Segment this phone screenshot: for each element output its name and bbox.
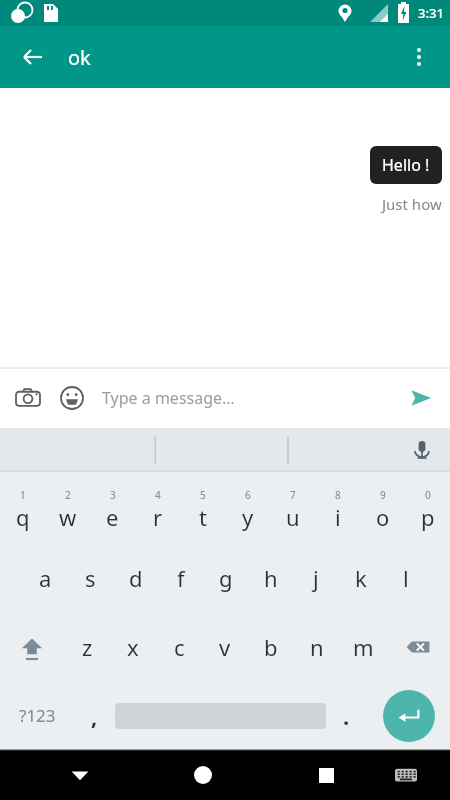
button[interactable]: Send xyxy=(398,375,444,421)
staticText: k xyxy=(355,563,367,593)
staticText: 3:31 xyxy=(418,4,444,22)
staticText: , xyxy=(91,701,98,731)
staticText: f xyxy=(177,563,185,593)
staticText: x xyxy=(127,632,139,662)
staticText: 8 xyxy=(335,488,341,502)
staticText: m xyxy=(353,632,374,662)
button[interactable]: 2 xyxy=(45,476,90,544)
staticText: 5 xyxy=(200,488,206,502)
button[interactable]: Camera xyxy=(6,376,50,420)
button[interactable]: Space xyxy=(115,681,326,750)
button[interactable]: ?123 xyxy=(0,681,74,750)
button[interactable]: Emoji xyxy=(50,376,94,420)
button[interactable]: m xyxy=(340,612,386,681)
staticText: ok xyxy=(68,44,91,71)
button[interactable]: 9 xyxy=(360,476,405,544)
button[interactable]: v xyxy=(202,612,248,681)
staticText: p xyxy=(421,502,435,532)
staticText: i xyxy=(335,502,341,532)
button[interactable]: d xyxy=(113,544,158,612)
staticText: 3 xyxy=(110,488,116,502)
button[interactable]: c xyxy=(156,612,202,681)
button[interactable]: 1 xyxy=(0,476,45,544)
button[interactable]: 3 xyxy=(90,476,135,544)
button[interactable]: Switch keyboard xyxy=(382,751,430,799)
staticText: o xyxy=(376,502,390,532)
staticText: 2 xyxy=(65,488,71,502)
staticText: j xyxy=(313,563,319,593)
button[interactable]: More options xyxy=(396,34,442,80)
staticText: h xyxy=(264,563,278,593)
button[interactable]: j xyxy=(293,544,338,612)
button[interactable]: s xyxy=(68,544,113,612)
button[interactable]: z xyxy=(64,612,110,681)
button[interactable]: , xyxy=(74,681,115,750)
staticText: n xyxy=(310,632,324,662)
staticText: d xyxy=(129,563,143,593)
staticText: 4 xyxy=(155,488,161,502)
staticText: ?123 xyxy=(19,704,56,727)
button[interactable]: Back xyxy=(56,751,104,799)
staticText: Hello ! xyxy=(382,154,430,176)
button[interactable]: 5 xyxy=(180,476,225,544)
staticText: Just how xyxy=(382,194,442,214)
staticText: 9 xyxy=(380,488,386,502)
button[interactable]: f xyxy=(158,544,203,612)
button[interactable]: g xyxy=(203,544,248,612)
staticText: 6 xyxy=(245,488,251,502)
button[interactable]: . xyxy=(326,681,367,750)
staticText: c xyxy=(174,632,185,662)
button[interactable]: k xyxy=(338,544,383,612)
button[interactable]: Back xyxy=(10,34,56,80)
staticText: b xyxy=(264,632,278,662)
button[interactable]: 8 xyxy=(315,476,360,544)
staticText: 0 xyxy=(425,488,431,502)
button[interactable]: 0 xyxy=(405,476,450,544)
staticText: z xyxy=(82,632,93,662)
button[interactable]: 6 xyxy=(225,476,270,544)
staticText: s xyxy=(85,563,96,593)
button[interactable]: n xyxy=(294,612,340,681)
staticText: w xyxy=(59,502,77,532)
staticText: u xyxy=(286,502,300,532)
staticText: a xyxy=(39,563,52,593)
staticText: r xyxy=(153,502,163,532)
button[interactable]: Home xyxy=(179,751,227,799)
button[interactable]: h xyxy=(248,544,293,612)
staticText: Type a message… xyxy=(102,387,235,409)
staticText: . xyxy=(343,701,350,731)
staticText: y xyxy=(242,502,254,532)
button[interactable]: Enter xyxy=(367,681,450,750)
staticText: q xyxy=(16,502,30,532)
staticText: e xyxy=(106,502,119,532)
button[interactable]: 4 xyxy=(135,476,180,544)
button[interactable]: Recents xyxy=(302,751,350,799)
staticText: 7 xyxy=(290,488,296,502)
button[interactable]: Hello ! xyxy=(370,146,442,184)
button[interactable]: l xyxy=(383,544,428,612)
staticText: 1 xyxy=(20,488,26,502)
button[interactable]: Shift xyxy=(0,612,64,681)
staticText: t xyxy=(199,502,207,532)
button[interactable]: Backspace xyxy=(386,612,450,681)
staticText: l xyxy=(403,563,409,593)
staticText: g xyxy=(219,563,233,593)
staticText: v xyxy=(219,632,231,662)
button[interactable]: b xyxy=(248,612,294,681)
button[interactable]: x xyxy=(110,612,156,681)
button[interactable]: 7 xyxy=(270,476,315,544)
button[interactable]: a xyxy=(22,544,68,612)
